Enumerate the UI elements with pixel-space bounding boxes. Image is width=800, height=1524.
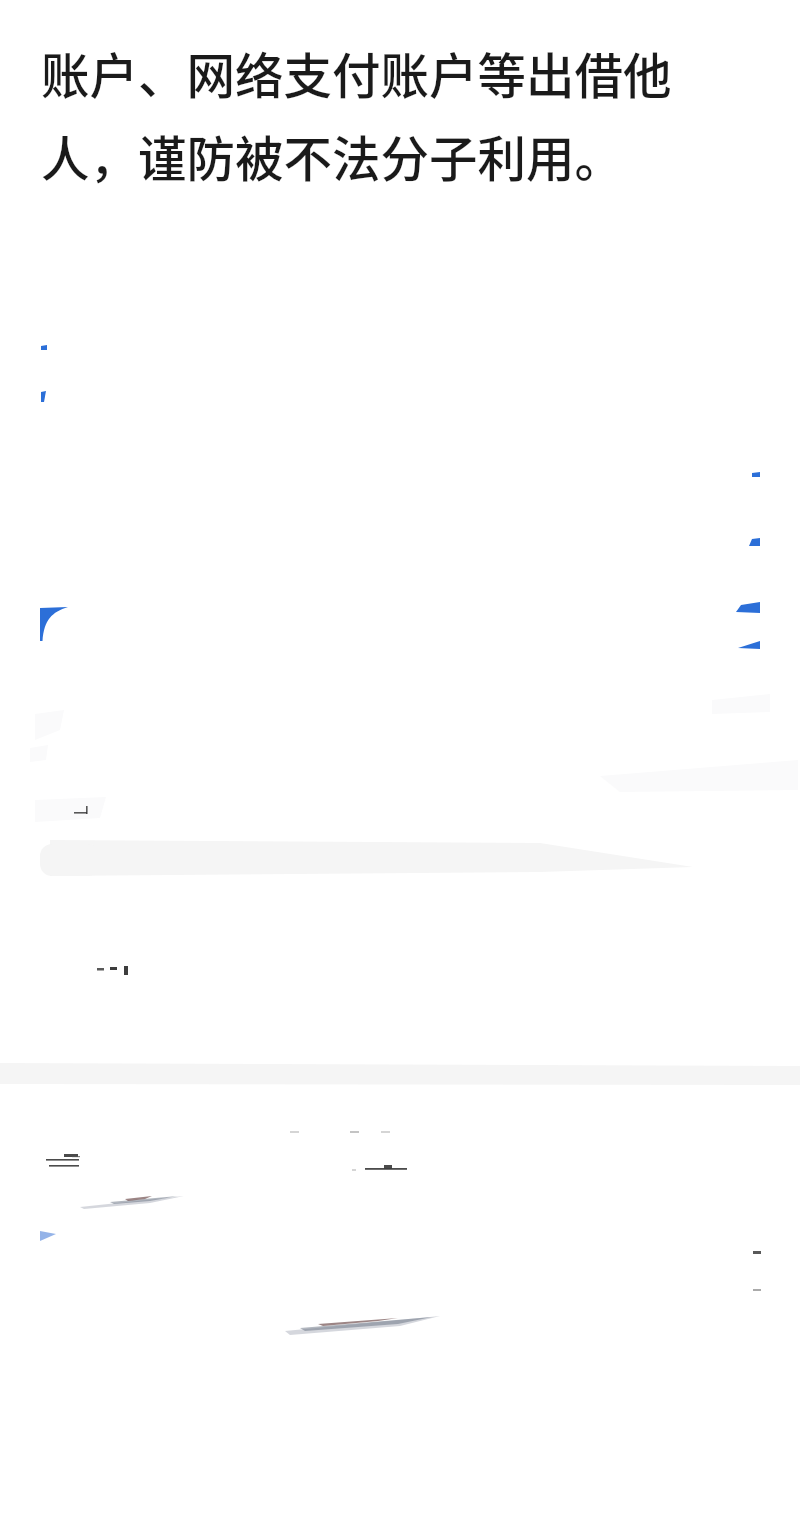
staticText: 账户、网络支付账户等出借他 人，谨防被不法分子利用。 [41, 38, 672, 191]
other: Page content [0, 0, 800, 1524]
button[interactable]: 账户、网络支付账户等出借他 人，谨防被不法分子利用。 [41, 38, 780, 191]
